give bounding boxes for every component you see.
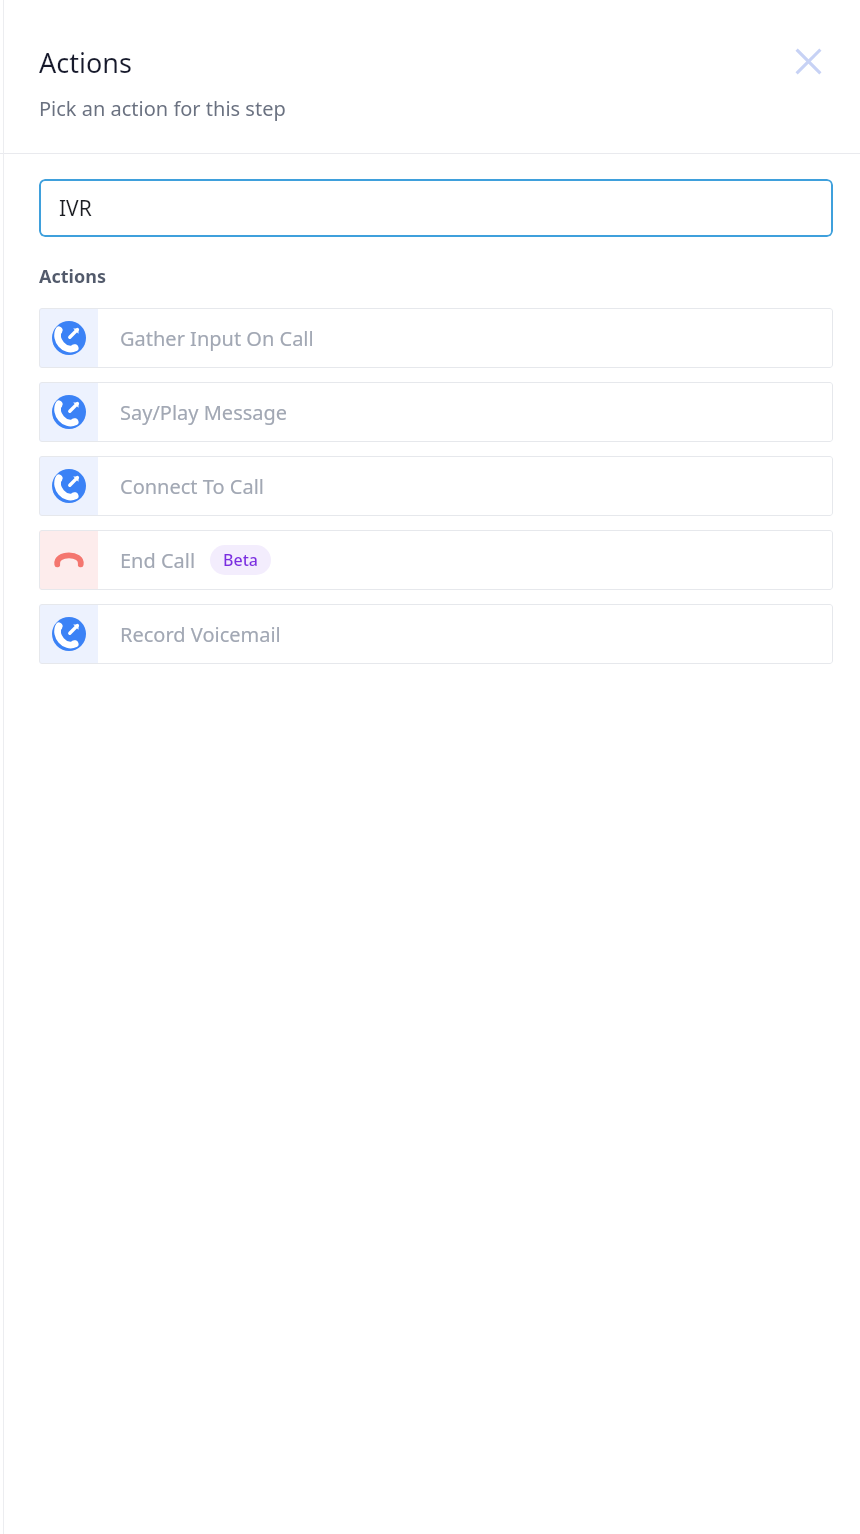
staticText: Gather Input On Call [120,325,314,352]
staticText: End Call [120,547,196,574]
button[interactable]: Close [785,38,831,84]
button[interactable]: Record Voicemail [39,604,833,664]
staticText: Connect To Call [120,473,264,500]
staticText: Actions [39,44,132,81]
button[interactable]: IVR [39,179,833,237]
staticText: Pick an action for this step [39,95,286,122]
staticText: Record Voicemail [120,621,281,648]
button[interactable]: Gather Input On Call [39,308,833,368]
staticText: Actions [39,264,106,289]
button[interactable]: End Call [39,530,833,590]
staticText: IVR [59,194,92,223]
staticText: Beta [223,549,258,571]
button[interactable]: Say/Play Message [39,382,833,442]
button[interactable]: Connect To Call [39,456,833,516]
staticText: Say/Play Message [120,399,288,426]
